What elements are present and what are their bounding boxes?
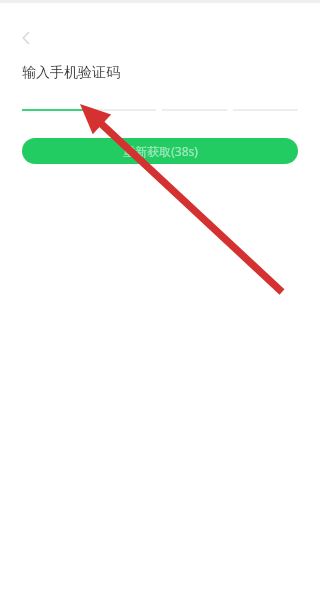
staticText: 输入手机验证码 [22,64,120,82]
button[interactable]: 重新获取(38s) [22,138,298,164]
button[interactable]: Verification code input [22,107,298,113]
button[interactable]: Back [12,24,40,52]
staticText: 重新获取(38s) [123,143,198,159]
